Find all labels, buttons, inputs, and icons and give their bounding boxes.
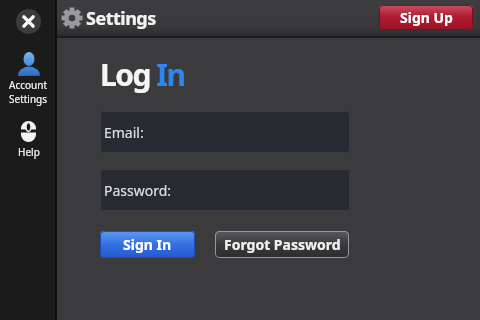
button[interactable]: Password: (100, 169, 350, 211)
button[interactable] (16, 9, 41, 34)
button[interactable]: Help (0, 121, 57, 159)
button[interactable]: Account (0, 52, 57, 106)
staticText: Help (18, 145, 40, 159)
button[interactable]: Sign In (100, 231, 195, 258)
button[interactable]: Email: (100, 111, 350, 153)
staticText: Log In (100, 54, 185, 95)
staticText: Settings (9, 92, 48, 106)
staticText: Account (9, 78, 48, 92)
staticText: Forgot Password (224, 235, 341, 254)
staticText: Email: (104, 123, 144, 142)
button[interactable]: Forgot Password (215, 231, 349, 258)
button[interactable]: Sign Up (379, 5, 473, 30)
staticText: Sign In (123, 235, 172, 254)
staticText: Password: (104, 181, 172, 200)
staticText: Settings (86, 6, 156, 31)
staticText: Sign Up (400, 8, 453, 27)
